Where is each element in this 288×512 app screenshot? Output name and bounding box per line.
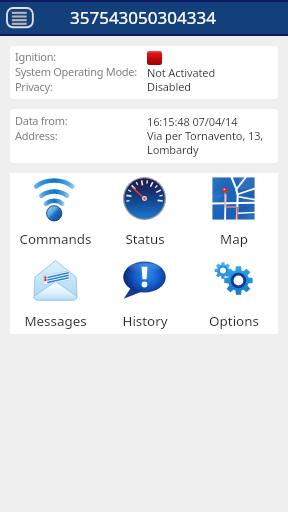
staticText: Ignition: System Operating Mode: Privacy… [15,49,137,94]
staticText: History [122,312,168,330]
staticText: 16:15:48 07/04/14 Via per Tornavento, 13… [147,114,264,157]
staticText: Status [125,230,165,248]
staticText: Options [209,312,259,330]
button[interactable]: Messages [10,257,100,330]
staticText: Map [220,230,248,248]
button[interactable]: Commands [10,173,100,248]
staticText: Data from: Address: [15,113,68,143]
button[interactable]: Status [100,173,189,248]
button[interactable]: History [100,257,189,330]
button[interactable]: Map [189,173,278,248]
staticText: Messages [24,312,87,330]
button[interactable]: Menu [5,6,34,29]
button[interactable]: Options [189,257,278,330]
staticText: 357543050304334 [70,6,216,29]
staticText: Commands [19,230,92,248]
staticText: Not Activated Disabled [147,65,216,94]
